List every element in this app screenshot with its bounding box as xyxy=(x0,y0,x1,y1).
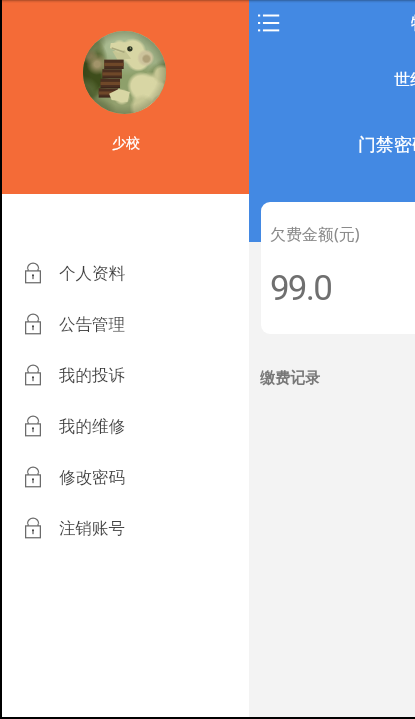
staticText: 少校 xyxy=(112,135,140,153)
button[interactable]: 公告管理 xyxy=(2,297,249,348)
staticText: 世纪花园小区 xyxy=(394,70,415,90)
staticText: 个人资料 xyxy=(59,263,125,284)
staticText: 缴费记录 xyxy=(260,369,320,388)
staticText: 修改密码 xyxy=(59,467,125,488)
staticText: 公告管理 xyxy=(59,314,125,335)
button[interactable]: 我的维修 xyxy=(2,399,249,450)
staticText: 欠费金额(元) xyxy=(270,223,360,245)
staticText: 门禁密码 xyxy=(358,134,415,157)
button[interactable]: 修改密码 xyxy=(2,450,249,501)
staticText: 99.0 xyxy=(270,268,332,309)
button[interactable]: 注销账号 xyxy=(2,501,249,552)
staticText: 物业服务中心 xyxy=(411,12,415,35)
staticText: 我的投诉 xyxy=(59,365,125,386)
button[interactable]: Avatar xyxy=(83,31,166,114)
button[interactable]: 个人资料 xyxy=(2,246,249,297)
staticText: 注销账号 xyxy=(59,518,125,539)
staticText: 我的维修 xyxy=(59,416,125,437)
button[interactable]: 我的投诉 xyxy=(2,348,249,399)
button[interactable]: 欠费金额(元) xyxy=(261,202,415,334)
button[interactable]: Menu xyxy=(258,12,280,34)
